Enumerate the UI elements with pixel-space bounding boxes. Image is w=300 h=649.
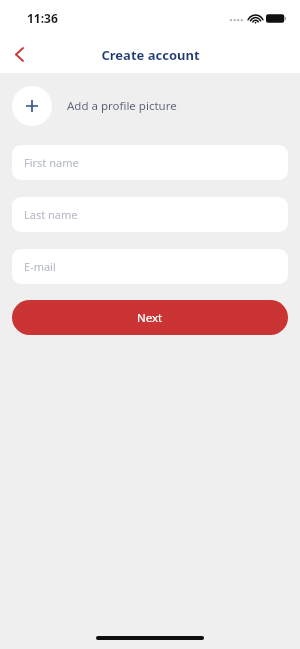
button[interactable]: Next [12,300,288,335]
staticText: First name [24,155,79,170]
button[interactable]: E-mail [12,249,288,284]
button[interactable]: First name [12,145,288,180]
button[interactable]: Back [0,36,38,73]
staticText: Add a profile picture [67,98,177,114]
staticText: E-mail [24,259,56,274]
staticText: Create account [101,46,200,64]
staticText: Last name [24,207,78,222]
staticText: 11:36 [27,10,58,26]
staticText: Next [137,310,163,326]
button[interactable]: Last name [12,197,288,232]
button[interactable]: Add a profile picture [12,86,288,126]
